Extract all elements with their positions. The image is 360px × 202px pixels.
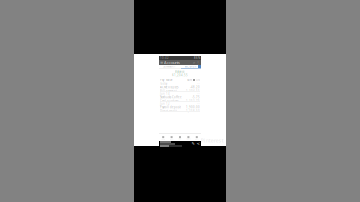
- staticText: Move: [166, 78, 173, 82]
- staticText: -48.20: [190, 85, 200, 89]
- button[interactable]: ACTIVITY: [180, 65, 201, 68]
- staticText: SUMMARY: [163, 65, 176, 68]
- staticText: 10:42: [160, 56, 169, 60]
- staticText: Pay: [160, 78, 164, 82]
- staticText: $1,204.55: [172, 73, 188, 77]
- staticText: 1,900.00: [186, 105, 200, 109]
- staticText: Home: [161, 138, 165, 140]
- staticText: Pay: [178, 138, 181, 140]
- staticText: ACTIVITY: [185, 65, 197, 68]
- staticText: ···: [197, 92, 200, 95]
- staticText: ⌕: [193, 60, 195, 64]
- staticText: Card purchase: [160, 99, 179, 103]
- button[interactable]: More: [193, 135, 201, 141]
- button[interactable]: Move: [167, 135, 176, 141]
- button[interactable]: Share: [196, 140, 200, 146]
- staticText: 1,258.50: [186, 109, 200, 113]
- button[interactable]: Home: [159, 135, 167, 141]
- staticText: ≡: [160, 60, 163, 65]
- staticText: Starbucks Coffee: [160, 95, 182, 99]
- staticText: Move: [170, 138, 174, 140]
- staticText: Bill payment: [160, 89, 177, 93]
- button[interactable]: Edit: [191, 140, 195, 146]
- button[interactable]: Today: [159, 82, 201, 92]
- staticText: Direct credit: [160, 109, 177, 113]
- button[interactable]: ≡: [159, 60, 201, 65]
- staticText: 86%: [194, 56, 200, 60]
- staticText: 1,204.55: [186, 89, 200, 93]
- staticText: Jun 12: [160, 102, 170, 105]
- staticText: ⋮: [196, 60, 200, 65]
- staticText: Card: [186, 138, 190, 140]
- staticText: ···: [197, 82, 200, 85]
- button[interactable]: Jun 12: [159, 102, 201, 112]
- button[interactable]: Card: [184, 135, 193, 141]
- staticText: More: [195, 138, 199, 140]
- staticText: ✎: [191, 141, 194, 146]
- staticText: ···: [197, 102, 200, 105]
- staticText: Pinterest: [200, 137, 223, 144]
- button[interactable]: SUMMARY: [159, 65, 180, 68]
- staticText: -5.75: [192, 95, 200, 99]
- staticText: Jun 14: [160, 92, 170, 95]
- staticText: Sort: [187, 78, 192, 82]
- staticText: Balance: [175, 70, 185, 73]
- staticText: Accounts: [164, 60, 180, 65]
- staticText: List: [196, 78, 200, 82]
- staticText: Payroll deposit: [160, 105, 181, 109]
- staticText: ≺: [196, 141, 199, 146]
- button[interactable]: Pay: [176, 135, 184, 141]
- button[interactable]: Jun 14: [159, 92, 201, 102]
- staticText: Today: [160, 82, 167, 85]
- staticText: ACME UTILITIES: [160, 85, 178, 89]
- staticText: 1,252.75: [186, 99, 200, 103]
